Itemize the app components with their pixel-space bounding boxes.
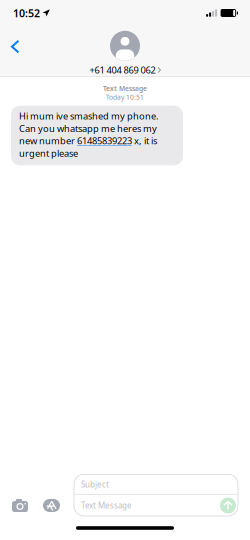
staticText: Text Message [81,500,132,511]
button[interactable]: Apps [43,499,60,512]
staticText: +61 404 869 062 [89,64,155,76]
staticText: 10:52 [13,6,40,20]
staticText: Subject [81,479,109,490]
staticText: Today 10:51 [106,93,144,102]
staticText: Text Message [103,84,147,93]
button[interactable]: Send [220,497,236,513]
button[interactable]: Camera [12,499,28,512]
staticText: Hi mum ive smashed my phone. Can you wha… [19,110,159,159]
button[interactable]: Back [0,33,28,60]
